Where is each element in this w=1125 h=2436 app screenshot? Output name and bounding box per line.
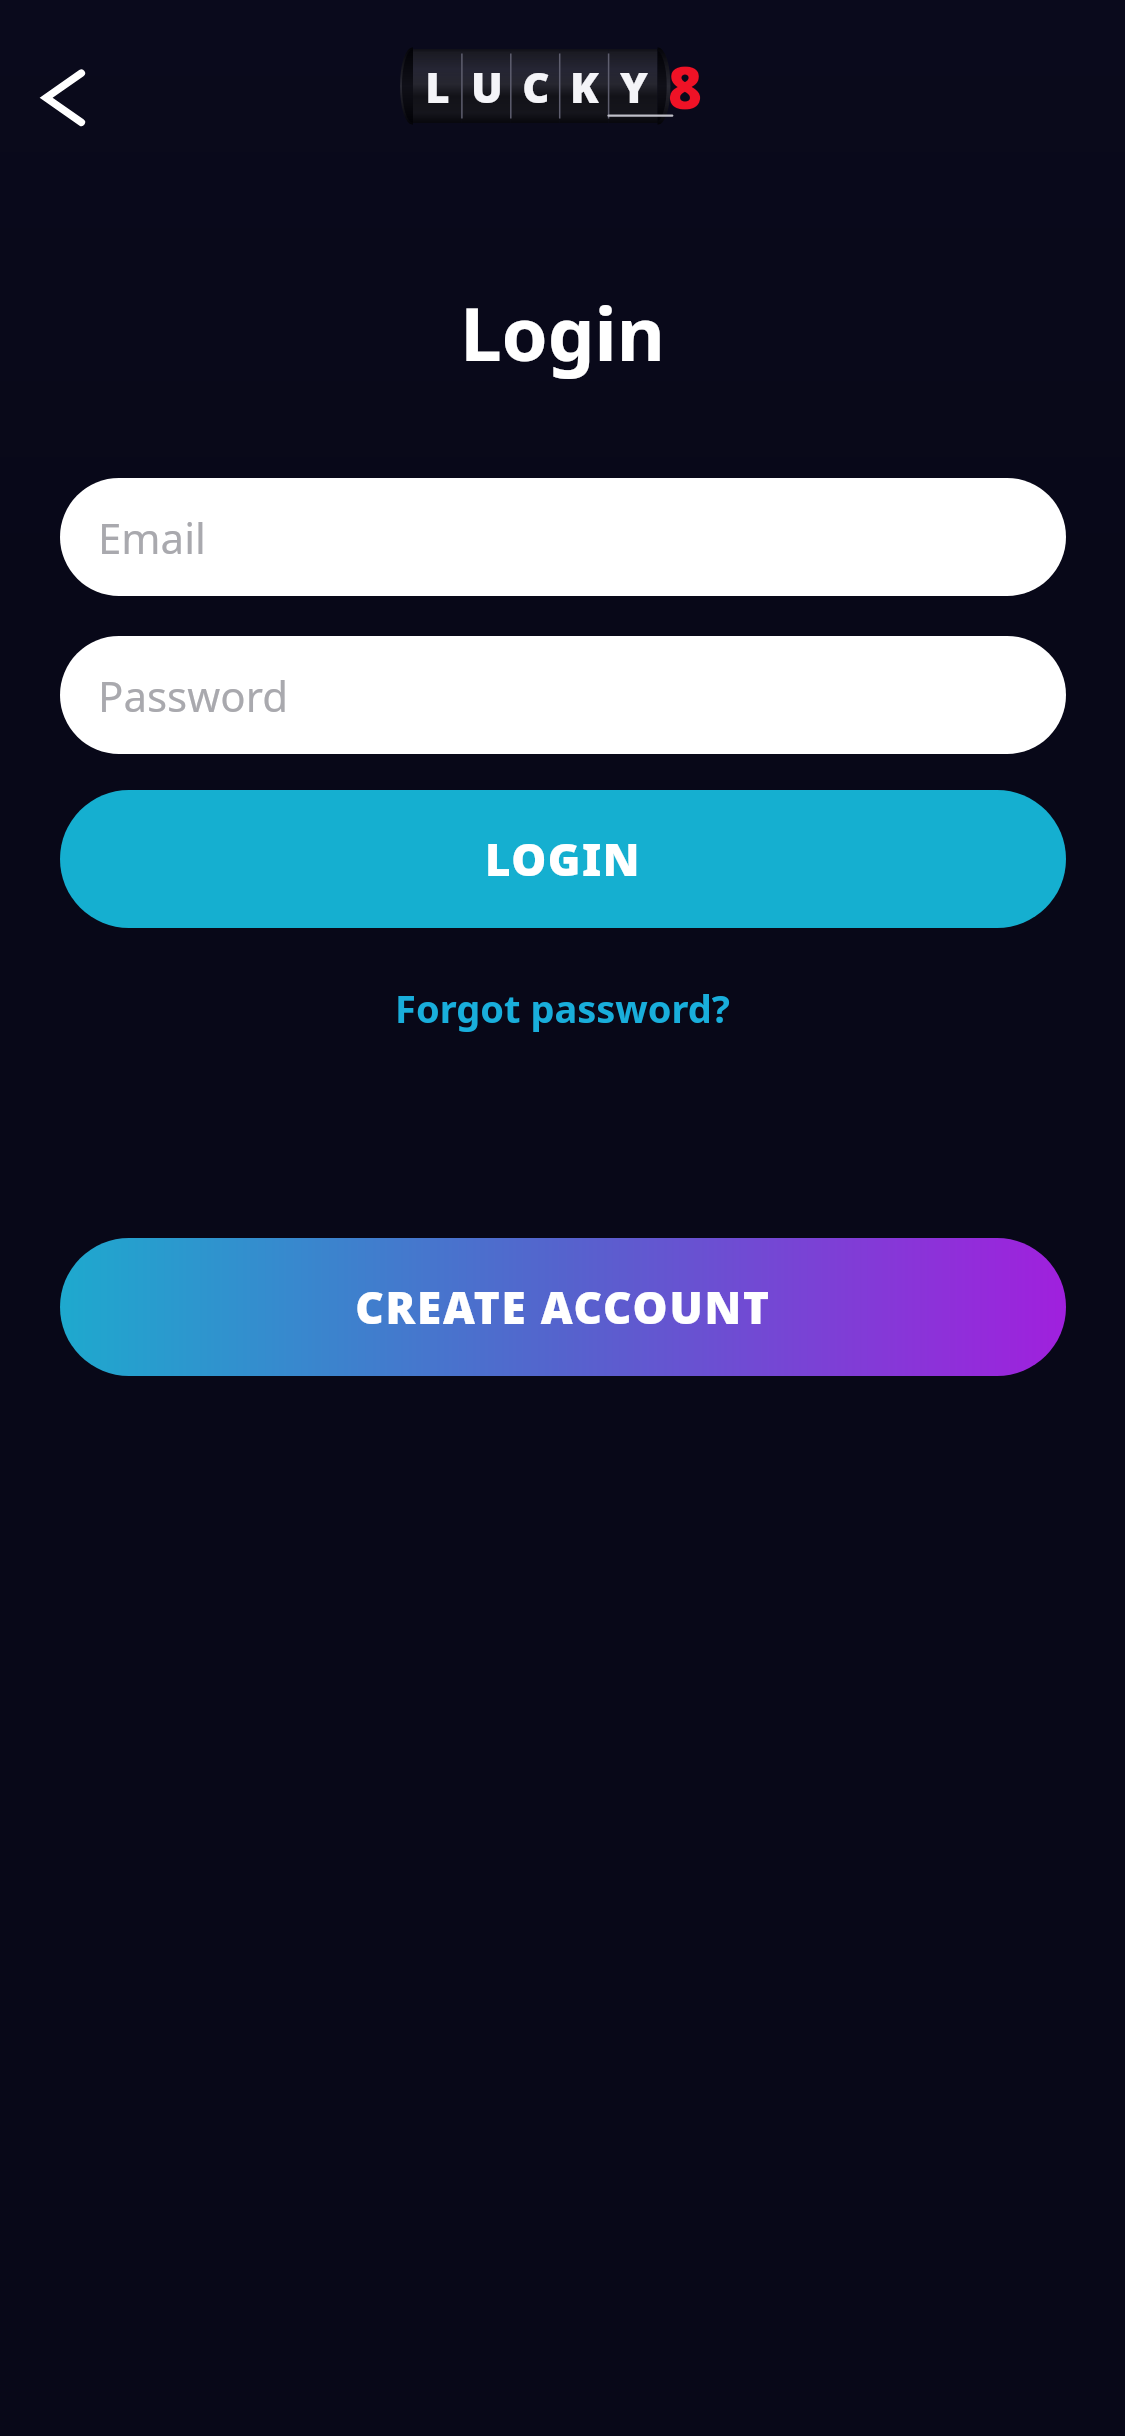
button[interactable]: CREATE ACCOUNT: [60, 1238, 1066, 1376]
staticText: Login: [460, 282, 665, 382]
button[interactable]: Forgot password?: [377, 972, 748, 1044]
staticText: C: [522, 58, 550, 115]
staticText: U: [471, 58, 503, 115]
button[interactable]: LOGIN: [60, 790, 1066, 928]
staticText: Forgot password?: [395, 982, 730, 1034]
staticText: Email: [98, 509, 206, 566]
button[interactable]: Back: [18, 52, 106, 140]
staticText: Password: [98, 667, 288, 724]
staticText: CREATE ACCOUNT: [355, 1277, 771, 1337]
staticText: K: [570, 58, 599, 115]
staticText: Y: [620, 58, 648, 115]
staticText: L: [425, 58, 450, 115]
button[interactable]: Password: [60, 636, 1066, 754]
staticText: 8: [668, 47, 702, 126]
button[interactable]: Email: [60, 478, 1066, 596]
staticText: LOGIN: [485, 829, 641, 889]
